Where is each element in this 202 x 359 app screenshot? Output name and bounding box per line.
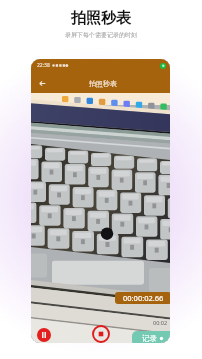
button[interactable]: 记录 <box>132 331 170 343</box>
staticText: 拍照秒表 <box>71 9 131 28</box>
staticText: 记录 <box>142 334 157 343</box>
staticText: 22:38 <box>37 62 50 69</box>
button[interactable]: Back <box>34 75 50 91</box>
staticText: 录屏下每个需要记录的时刻 <box>65 31 137 39</box>
button[interactable]: Stop <box>91 324 111 343</box>
button[interactable]: Pause <box>37 328 51 342</box>
staticText: 拍照秒表 <box>89 79 117 88</box>
staticText: 00:00:02.66 <box>123 293 164 303</box>
staticText: 00:02 <box>153 319 168 326</box>
